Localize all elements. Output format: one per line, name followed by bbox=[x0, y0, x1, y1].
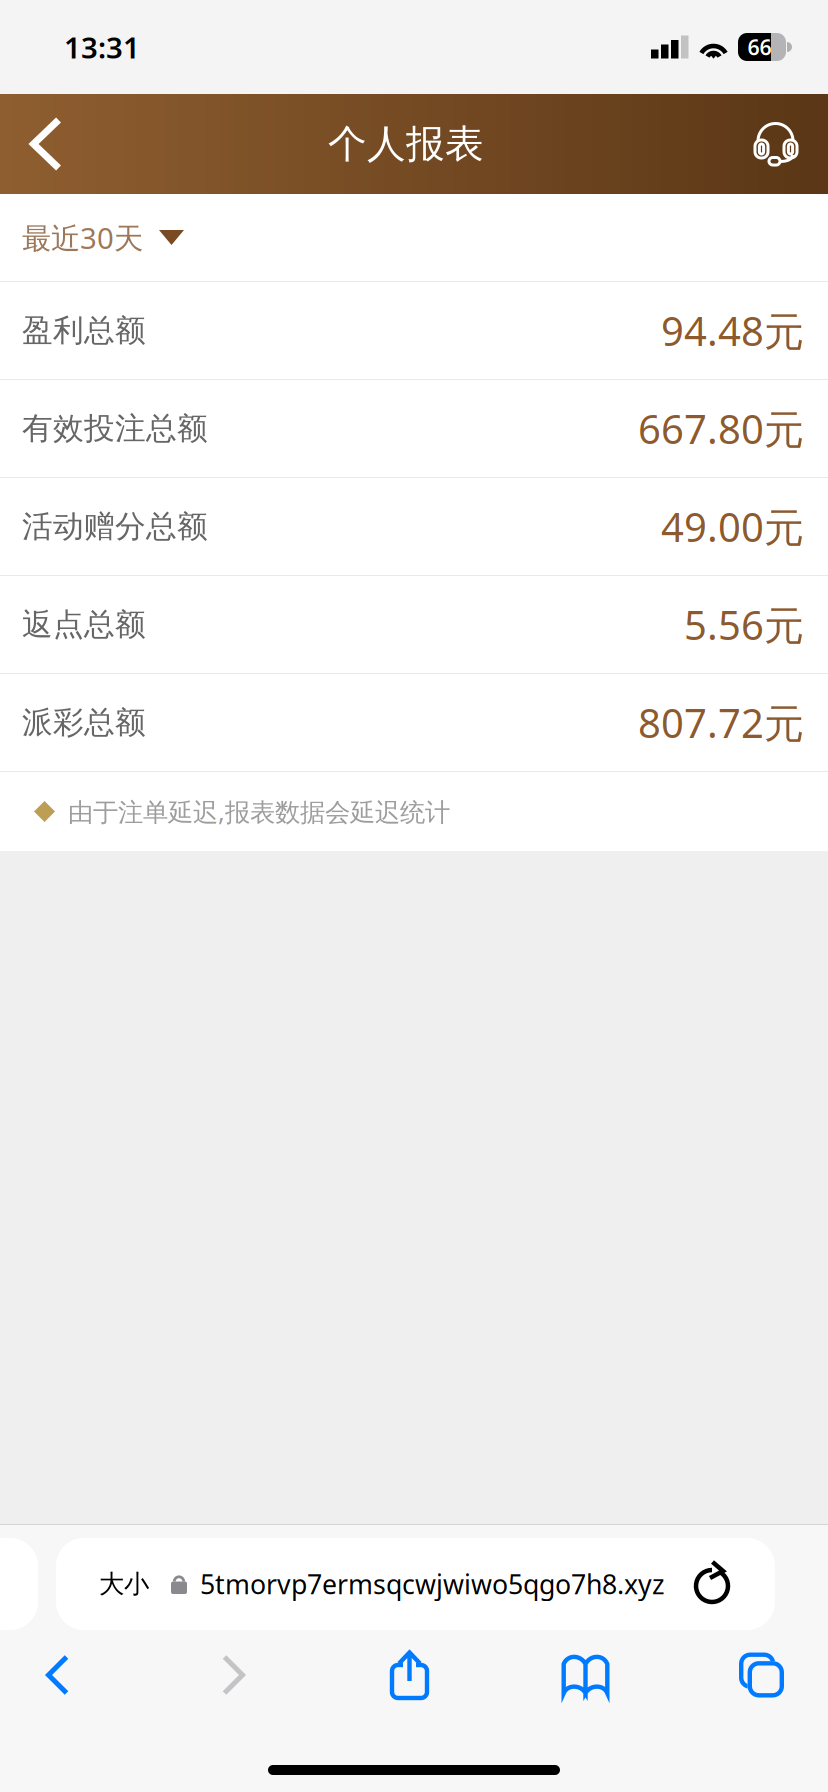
staticText: 94.48元 bbox=[661, 304, 804, 357]
button[interactable]: 最近30天 bbox=[0, 194, 828, 281]
button[interactable]: 活动赠分总额 bbox=[0, 478, 828, 576]
button[interactable]: Back bbox=[0, 1630, 115, 1720]
button[interactable]: Reload bbox=[671, 1538, 753, 1630]
button[interactable]: Forward bbox=[176, 1630, 291, 1720]
staticText: 派彩总额 bbox=[22, 704, 146, 741]
button[interactable]: Customer service bbox=[724, 94, 828, 194]
button[interactable]: 有效投注总额 bbox=[0, 380, 828, 478]
button[interactable]: 盈利总额 bbox=[0, 282, 828, 380]
staticText: 807.72元 bbox=[638, 696, 804, 749]
button[interactable]: 返点总额 bbox=[0, 576, 828, 674]
staticText: 5.56元 bbox=[684, 598, 804, 651]
staticText: 有效投注总额 bbox=[22, 410, 208, 447]
staticText: 盈利总额 bbox=[22, 312, 146, 349]
staticText: 活动赠分总额 bbox=[22, 508, 208, 545]
button[interactable]: 派彩总额 bbox=[0, 674, 828, 772]
button[interactable]: Tabs bbox=[704, 1630, 819, 1720]
staticText: 13:31 bbox=[64, 27, 140, 66]
staticText: 个人报表 bbox=[328, 120, 484, 168]
staticText: 49.00元 bbox=[661, 500, 804, 553]
staticText: 由于注单延迟,报表数据会延迟统计 bbox=[68, 795, 450, 828]
staticText: 最近30天 bbox=[22, 218, 143, 257]
staticText: 667.80元 bbox=[638, 402, 804, 455]
staticText: 5tmorvp7ermsqcwjwiwo5qgo7h8.xyz bbox=[200, 1566, 665, 1602]
button[interactable]: Share bbox=[352, 1630, 467, 1720]
button[interactable]: Bookmarks bbox=[528, 1630, 643, 1720]
button[interactable]: 大小 bbox=[78, 1538, 170, 1630]
staticText: 大小 bbox=[99, 1568, 149, 1599]
staticText: 66 bbox=[747, 33, 771, 61]
staticText: 返点总额 bbox=[22, 606, 146, 643]
button[interactable]: Back bbox=[0, 94, 92, 194]
